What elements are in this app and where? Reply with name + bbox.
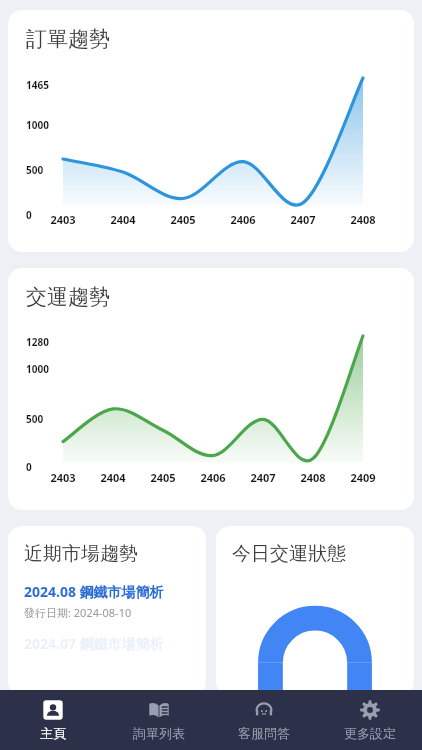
staticText: 今日交運狀態 xyxy=(232,542,346,566)
button[interactable]: 今日交運狀態 xyxy=(216,526,414,696)
staticText: 2404 xyxy=(89,470,137,485)
staticText: 500 xyxy=(26,163,44,177)
staticText: 2409 xyxy=(339,470,387,485)
button[interactable]: 客服問答 Support xyxy=(211,690,316,750)
staticText: 1000 xyxy=(26,362,49,376)
staticText: 詢單列表 xyxy=(133,725,185,741)
staticText: 2408 xyxy=(339,212,387,227)
button[interactable]: 交運趨勢 xyxy=(8,268,414,510)
staticText: 更多設定 xyxy=(344,725,396,741)
staticText: 訂單趨勢 xyxy=(26,26,110,52)
staticText: 交運趨勢 xyxy=(26,284,110,310)
staticText: 2404 xyxy=(99,212,147,227)
staticText: 500 xyxy=(26,412,44,426)
staticText: 0 xyxy=(26,208,32,222)
staticText: 0 xyxy=(26,460,32,474)
staticText: 2403 xyxy=(39,212,87,227)
staticText: 2024.07 鋼鐵市場簡析 xyxy=(24,634,164,653)
staticText: 1280 xyxy=(26,335,49,349)
staticText: 2405 xyxy=(159,212,207,227)
staticText: 近期市場趨勢 xyxy=(24,542,138,566)
staticText: 1465 xyxy=(26,78,49,92)
staticText: 客服問答 xyxy=(238,725,290,741)
button[interactable]: 詢單列表 Inquiry list xyxy=(106,690,211,750)
staticText: 2403 xyxy=(39,470,87,485)
staticText: 1000 xyxy=(26,118,49,132)
staticText: 2024.08 鋼鐵市場簡析 xyxy=(24,582,164,601)
staticText: 2407 xyxy=(279,212,327,227)
staticText: 主頁 xyxy=(40,725,66,741)
staticText: 2406 xyxy=(189,470,237,485)
button[interactable]: 訂單趨勢 xyxy=(8,10,414,252)
button[interactable]: 近期市場趨勢 xyxy=(8,526,206,696)
staticText: 發行日期: 2024-08-10 xyxy=(24,605,132,620)
button[interactable]: 主頁 Home xyxy=(0,690,105,750)
button[interactable]: 更多設定 More settings xyxy=(317,690,422,750)
staticText: 2407 xyxy=(239,470,287,485)
staticText: 2405 xyxy=(139,470,187,485)
staticText: 2408 xyxy=(289,470,337,485)
staticText: 2406 xyxy=(219,212,267,227)
